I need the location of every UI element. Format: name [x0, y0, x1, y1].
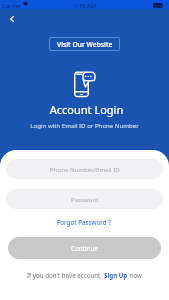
- staticText: Login with Email ID or Phone Number: [0, 121, 169, 129]
- staticText: If you don't have account,: [27, 271, 104, 279]
- staticText: Visit Our Website: [57, 40, 113, 49]
- staticText: Forgot Password ?: [57, 218, 112, 227]
- button[interactable]: Forgot Password ?: [53, 215, 116, 230]
- staticText: Sign Up: [104, 271, 128, 279]
- staticText: Phone Number/Email ID: [50, 165, 120, 173]
- button[interactable]: Visit Our Website: [49, 37, 120, 51]
- button[interactable]: Phone Number/Email ID: [6, 159, 163, 179]
- staticText: Continue: [71, 244, 98, 253]
- button[interactable]: Continue: [8, 237, 161, 259]
- staticText: now: [128, 271, 142, 279]
- button[interactable]: Sign Up: [104, 271, 128, 279]
- staticText: Carrier: [2, 2, 22, 10]
- staticText: 1:10 AM: [74, 2, 97, 10]
- staticText: Account Login: [2, 102, 169, 117]
- staticText: Password: [71, 195, 99, 203]
- button[interactable]: Password: [6, 189, 163, 209]
- button[interactable]: Back: [3, 10, 21, 28]
